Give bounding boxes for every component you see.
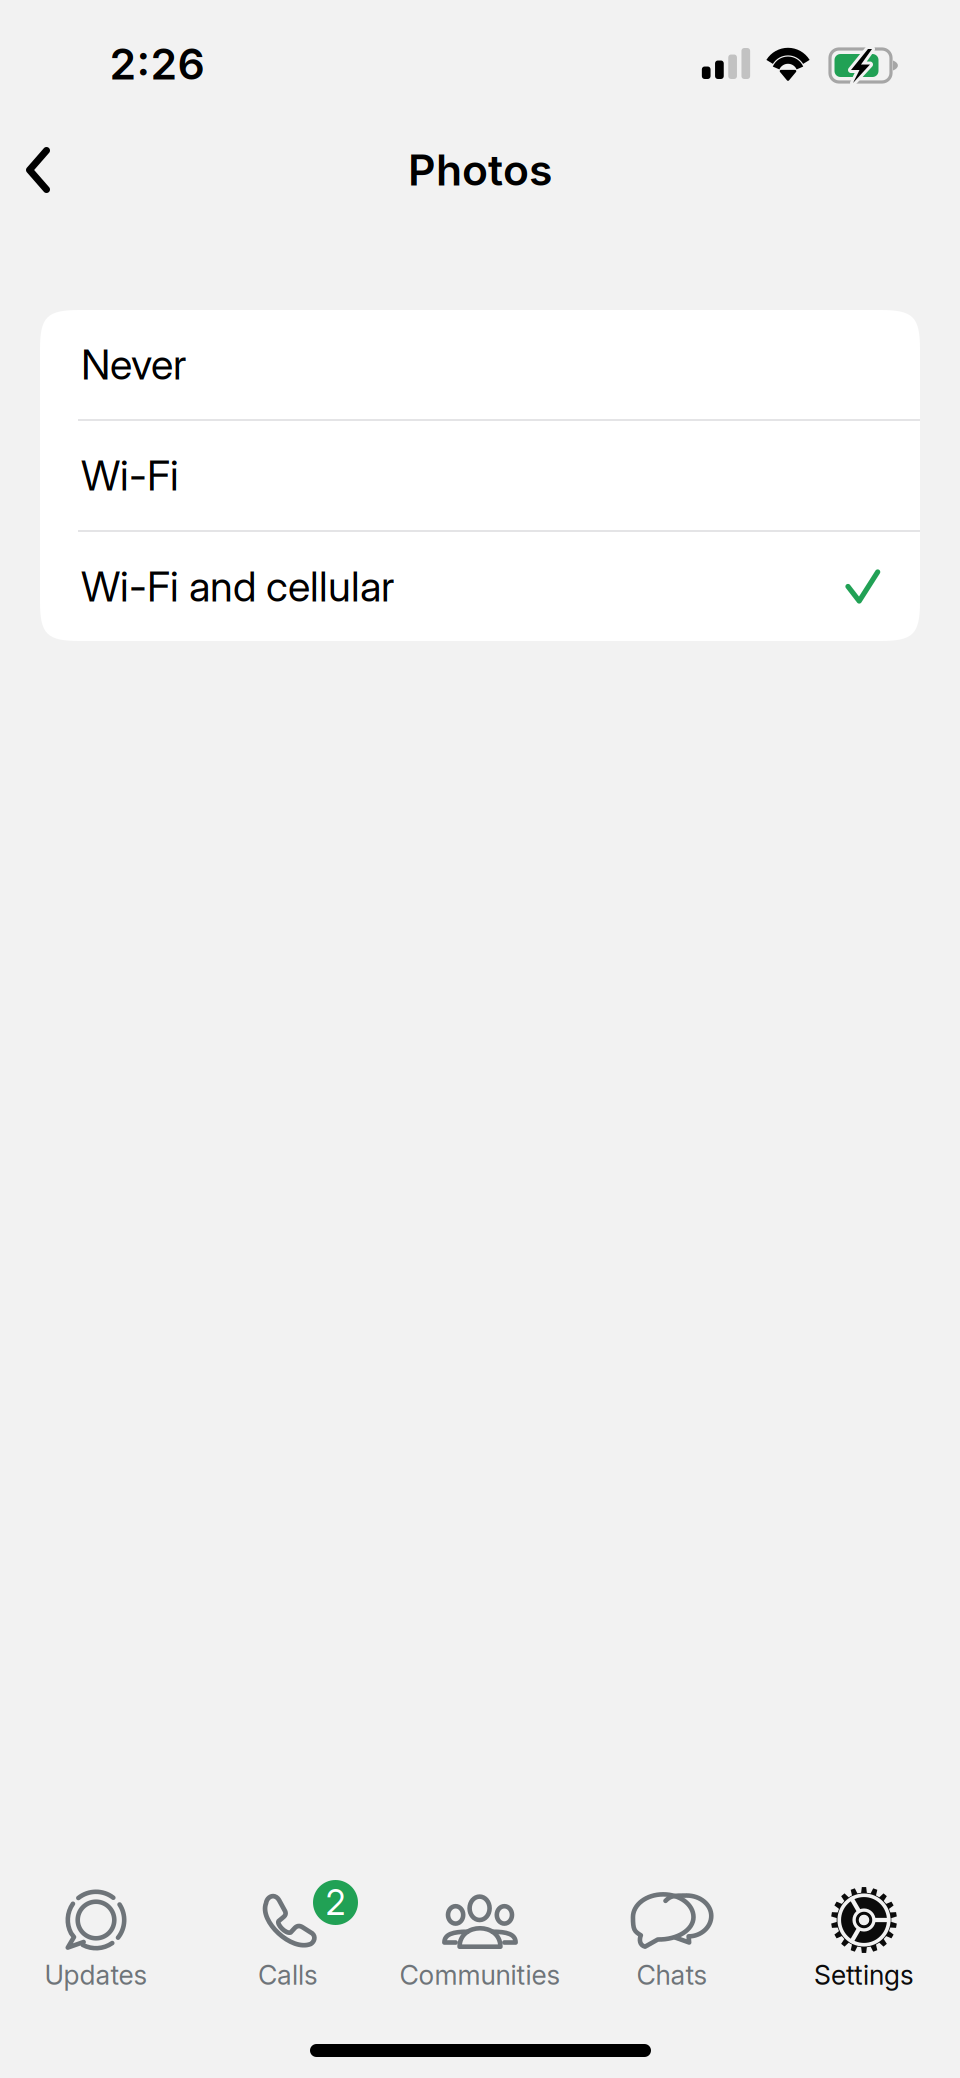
staticText: 2	[325, 1881, 345, 1923]
button[interactable]: Never	[40, 310, 920, 419]
staticText: Photos	[408, 144, 552, 196]
button[interactable]: Chats	[576, 1872, 768, 1992]
staticText: Chats	[636, 1959, 707, 1991]
button[interactable]: Back	[0, 124, 84, 216]
button[interactable]: Wi-Fi and cellular	[40, 532, 920, 641]
staticText: Updates	[44, 1959, 147, 1991]
staticText: Settings	[814, 1959, 914, 1991]
button[interactable]: Settings	[768, 1872, 960, 1992]
staticText: Wi-Fi	[81, 450, 179, 500]
staticText: Calls	[258, 1959, 318, 1991]
staticText: Never	[81, 339, 186, 389]
button[interactable]: Wi-Fi	[40, 421, 920, 530]
button[interactable]: Updates	[0, 1872, 192, 1992]
staticText: Communities	[399, 1959, 560, 1991]
button[interactable]: Calls	[192, 1872, 384, 1992]
button[interactable]: Communities	[384, 1872, 576, 1992]
staticText: Wi-Fi and cellular	[81, 561, 394, 611]
staticText: 2:26	[109, 38, 204, 90]
